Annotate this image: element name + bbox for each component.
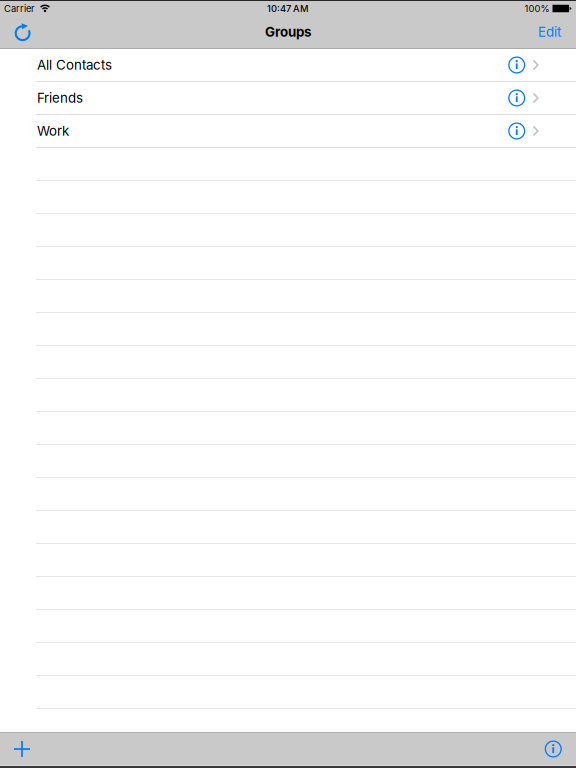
staticText: All Contacts (37, 57, 112, 73)
button[interactable]: Info (544, 740, 562, 758)
staticText: 10:47 AM (267, 3, 309, 14)
staticText: Friends (37, 90, 83, 106)
button[interactable]: More info about Friends (508, 89, 525, 107)
button[interactable]: Friends (0, 82, 576, 115)
staticText: 100% (524, 3, 549, 14)
button[interactable]: More info about Work (508, 122, 525, 140)
staticText: Carrier (4, 3, 35, 14)
button[interactable]: All Contacts (0, 49, 576, 82)
staticText: Work (37, 123, 69, 139)
button[interactable]: Work (0, 115, 576, 148)
button[interactable]: Edit (538, 24, 561, 40)
button[interactable]: Refresh (14, 23, 32, 41)
button[interactable]: Add group (14, 741, 30, 757)
staticText: Edit (538, 24, 561, 40)
staticText: Groups (265, 24, 311, 40)
button[interactable]: More info about All Contacts (508, 56, 525, 74)
